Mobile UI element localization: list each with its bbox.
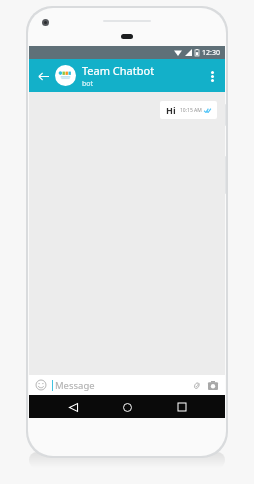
- button[interactable]: Hi: [160, 101, 217, 119]
- button[interactable]: Back: [62, 396, 84, 418]
- staticText: Message: [55, 379, 95, 392]
- staticText: 12:30: [202, 48, 220, 58]
- button[interactable]: More options: [203, 67, 221, 85]
- button[interactable]: Message: [55, 379, 189, 392]
- button[interactable]: Attach file: [189, 378, 203, 392]
- button[interactable]: Team Chatbot avatar: [55, 65, 76, 86]
- staticText: Hi: [166, 104, 176, 116]
- button[interactable]: Recent apps: [171, 396, 193, 418]
- button[interactable]: Camera: [206, 378, 220, 392]
- button[interactable]: Back: [34, 67, 52, 85]
- staticText: 10:15 AM: [180, 107, 202, 114]
- button[interactable]: Home: [116, 396, 138, 418]
- button[interactable]: Emoji: [34, 378, 48, 392]
- button[interactable]: Team Chatbot: [82, 63, 203, 89]
- staticText: Team Chatbot: [82, 63, 155, 78]
- staticText: bot: [82, 79, 94, 89]
